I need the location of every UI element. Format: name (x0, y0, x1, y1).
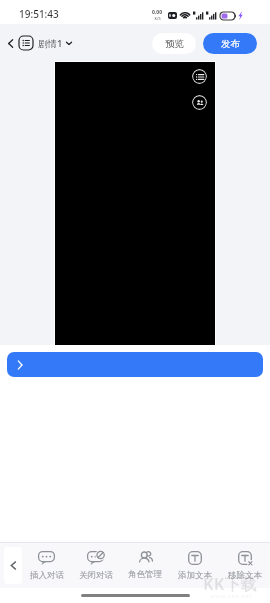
staticText: 移除文本 (228, 570, 262, 581)
staticText: 插入对话 (30, 570, 64, 581)
staticText: K/S (154, 16, 161, 21)
staticText: 添加文本 (178, 570, 212, 581)
button[interactable]: Characters (192, 95, 207, 110)
button[interactable]: 剧情1 (19, 36, 73, 50)
staticText: KK下载 (203, 573, 258, 595)
staticText: 关闭对话 (79, 570, 113, 581)
staticText: 19:51:43 (19, 7, 59, 21)
staticText: 0.00 (152, 9, 162, 16)
button[interactable]: Script list (192, 69, 207, 84)
button[interactable]: Collapse toolbar (4, 547, 22, 584)
button[interactable]: 角色管理 (120, 543, 170, 588)
staticText: www.kkx.net (210, 592, 253, 600)
staticText: 剧情1 (38, 37, 63, 50)
button[interactable]: 关闭对话 (71, 543, 120, 588)
staticText: 发布 (221, 38, 240, 50)
button[interactable]: 发布 (203, 33, 257, 54)
staticText: 预览 (165, 38, 184, 50)
button[interactable]: Back (2, 35, 18, 51)
button[interactable] (7, 352, 263, 377)
button[interactable]: 插入对话 (22, 543, 71, 588)
button[interactable]: 移除文本 (220, 543, 270, 588)
staticText: 角色管理 (128, 569, 162, 580)
button[interactable]: 添加文本 (170, 543, 220, 588)
button[interactable]: 预览 (152, 33, 196, 54)
